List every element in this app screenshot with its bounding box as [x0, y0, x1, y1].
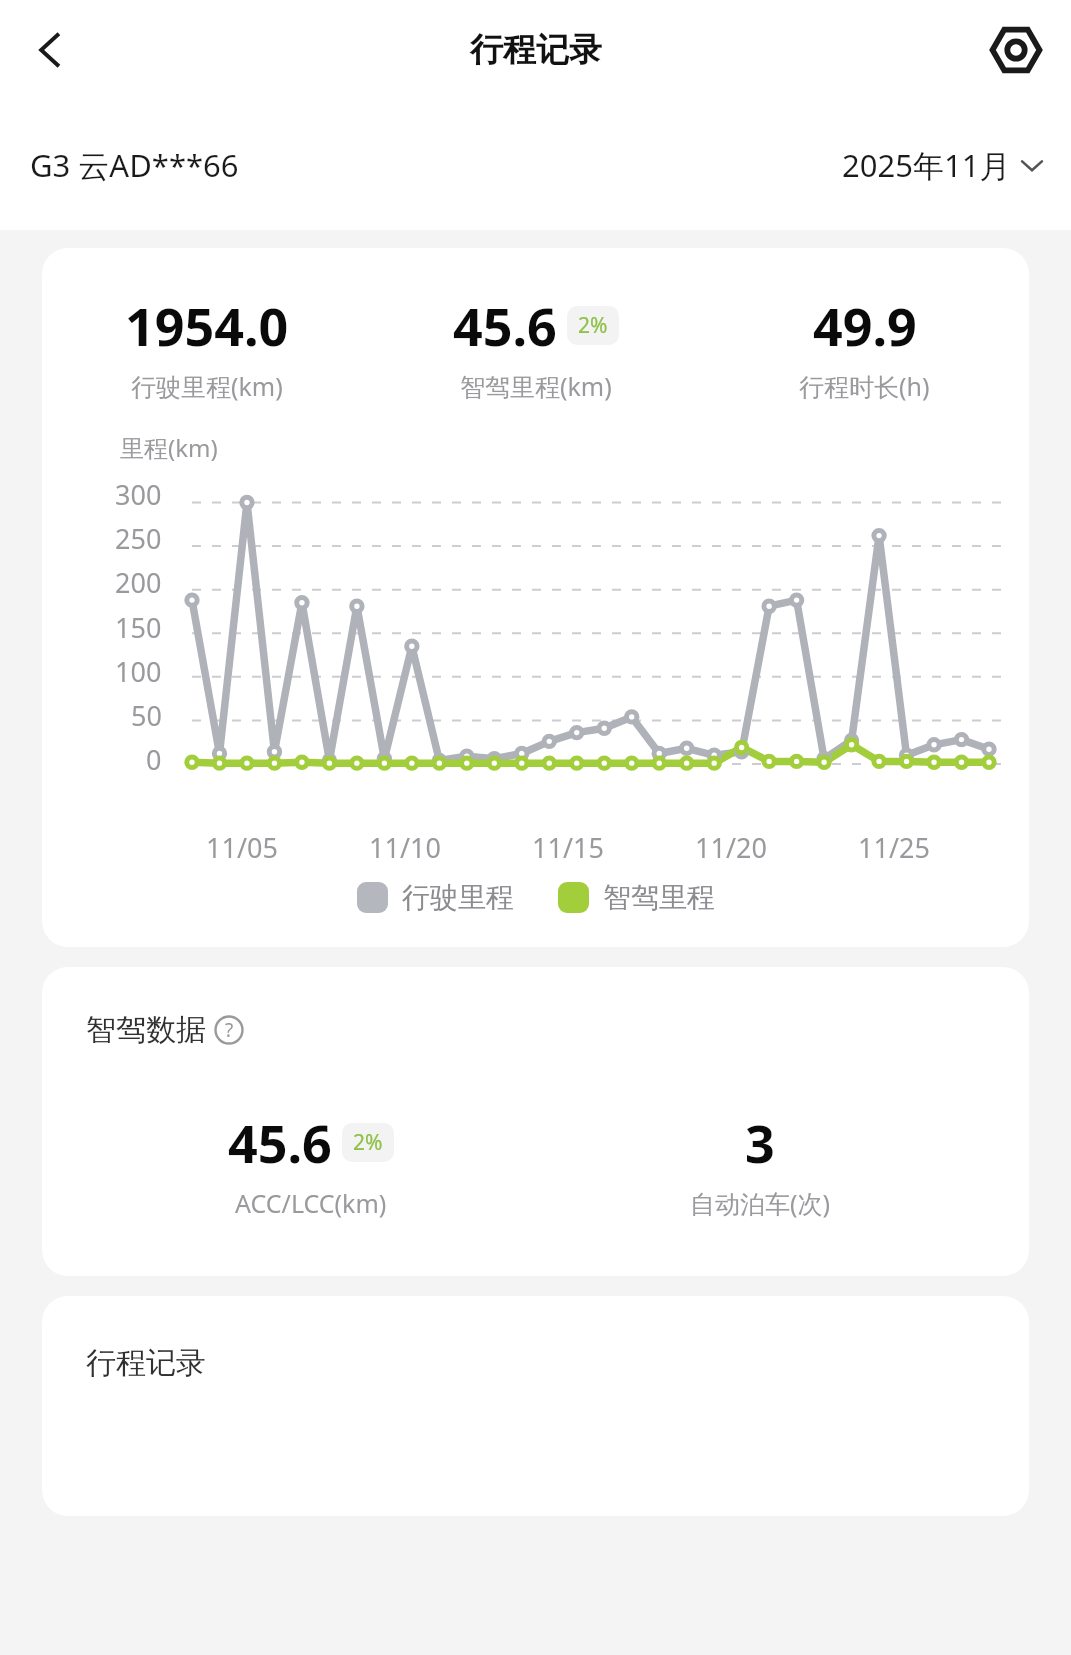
staticText: 300	[115, 476, 162, 513]
staticText: 150	[115, 609, 162, 646]
staticText: 智驾里程(km)	[460, 369, 612, 403]
staticText: 1954.0	[125, 290, 289, 361]
staticText: 49.9	[813, 290, 917, 361]
staticText: 3	[745, 1107, 775, 1178]
staticText: 行程时长(h)	[799, 369, 930, 403]
staticText: 11/25	[858, 829, 930, 866]
staticText: 45.6	[453, 290, 557, 361]
staticText: 行驶里程(km)	[131, 369, 283, 403]
staticText: 11/15	[532, 829, 604, 866]
staticText: 行驶里程	[402, 880, 514, 915]
button[interactable]: 智驾数据	[42, 967, 1029, 1276]
button[interactable]: Help	[214, 1015, 244, 1045]
staticText: 智驾里程	[603, 880, 715, 915]
staticText: 行程记录	[86, 1344, 206, 1382]
button[interactable]: Back	[18, 18, 82, 82]
button[interactable]: 行程记录	[42, 1296, 1029, 1516]
button[interactable]: Settings	[983, 17, 1049, 83]
staticText: 200	[115, 564, 162, 601]
staticText: 50	[131, 697, 162, 734]
staticText: 行程记录	[470, 29, 602, 71]
staticText: 2%	[578, 311, 608, 340]
staticText: 45.6	[228, 1107, 332, 1178]
staticText: 100	[115, 653, 162, 690]
staticText: 2025年11月	[842, 144, 1011, 186]
staticText: 11/10	[369, 829, 441, 866]
staticText: 2%	[353, 1128, 383, 1157]
button[interactable]: 1954.0	[42, 248, 1029, 947]
staticText: ACC/LCC(km)	[235, 1186, 387, 1220]
staticText: G3 云AD***66	[30, 144, 239, 186]
staticText: 11/05	[206, 829, 278, 866]
staticText: 自动泊车(次)	[690, 1186, 831, 1220]
staticText: 250	[115, 520, 162, 557]
staticText: ?	[225, 1017, 234, 1043]
button[interactable]: 2025年11月	[842, 144, 1045, 186]
staticText: 0	[146, 741, 162, 778]
staticText: 里程(km)	[120, 431, 218, 464]
staticText: 11/20	[695, 829, 767, 866]
staticText: 智驾数据	[86, 1011, 206, 1049]
